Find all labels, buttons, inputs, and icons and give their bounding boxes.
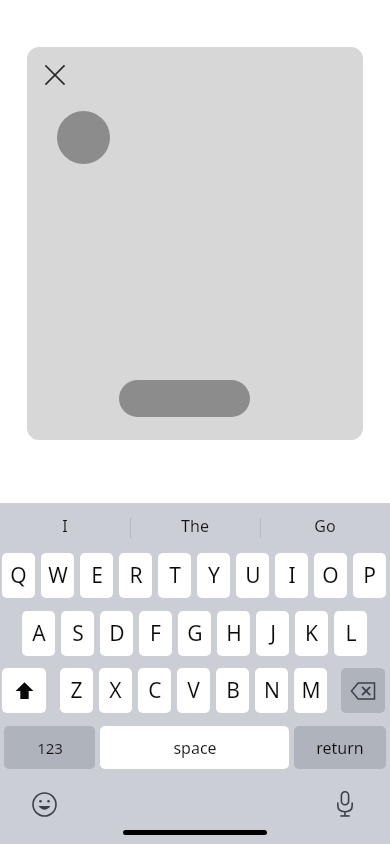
button[interactable]: I	[275, 553, 308, 598]
staticText: L	[345, 619, 357, 648]
button[interactable]: space	[100, 726, 289, 769]
button[interactable]: P	[353, 553, 386, 598]
staticText: Q	[10, 561, 27, 590]
staticText: N	[264, 676, 280, 705]
button[interactable]: Close	[35, 55, 75, 95]
staticText: D	[109, 619, 125, 648]
button[interactable]: Backspace	[341, 668, 385, 713]
button[interactable]: I	[0, 503, 130, 548]
button[interactable]: 123	[4, 726, 95, 769]
staticText: A	[32, 619, 46, 648]
button[interactable]: M	[294, 668, 327, 713]
button[interactable]: Z	[60, 668, 93, 713]
staticText: K	[305, 619, 318, 648]
staticText: G	[187, 619, 203, 648]
staticText: F	[150, 619, 161, 648]
staticText: The	[181, 515, 209, 537]
button[interactable]: U	[236, 553, 269, 598]
staticText: M	[301, 676, 321, 705]
button[interactable]: Dictation	[327, 786, 363, 822]
button[interactable]: O	[314, 553, 347, 598]
button[interactable]: return	[294, 726, 386, 769]
staticText: return	[316, 737, 364, 759]
staticText: S	[72, 619, 84, 648]
staticText: I	[288, 561, 296, 590]
button[interactable]: D	[100, 611, 133, 656]
button[interactable]: G	[178, 611, 211, 656]
button[interactable]: Go	[260, 503, 390, 548]
staticText: X	[109, 676, 122, 705]
staticText: E	[91, 561, 103, 590]
button[interactable]: Q	[2, 553, 35, 598]
button[interactable]: W	[41, 553, 74, 598]
button[interactable]: Shift	[2, 668, 46, 713]
button[interactable]: X	[99, 668, 132, 713]
button[interactable]: K	[295, 611, 328, 656]
staticText: O	[322, 561, 339, 590]
staticText: B	[226, 676, 240, 705]
button[interactable]: Action	[119, 380, 250, 417]
button[interactable]: A	[22, 611, 55, 656]
button[interactable]: B	[216, 668, 249, 713]
button[interactable]: L	[334, 611, 367, 656]
staticText: space	[173, 737, 217, 759]
staticText: P	[363, 561, 376, 590]
staticText: U	[245, 561, 261, 590]
button[interactable]: E	[80, 553, 113, 598]
staticText: R	[129, 561, 143, 590]
staticText: C	[148, 676, 162, 705]
button[interactable]: N	[255, 668, 288, 713]
button[interactable]: Avatar	[57, 111, 110, 164]
staticText: Z	[70, 676, 83, 705]
button[interactable]: The	[130, 503, 260, 548]
button[interactable]: R	[119, 553, 152, 598]
button[interactable]: Y	[197, 553, 230, 598]
button[interactable]: S	[61, 611, 94, 656]
button[interactable]: V	[177, 668, 210, 713]
button[interactable]: F	[139, 611, 172, 656]
staticText: Go	[314, 515, 336, 537]
staticText: W	[48, 561, 68, 590]
button[interactable]: Emoji	[26, 786, 62, 822]
staticText: J	[270, 619, 276, 648]
button[interactable]: H	[217, 611, 250, 656]
staticText: I	[62, 515, 68, 537]
staticText: Y	[208, 561, 220, 590]
staticText: H	[226, 619, 242, 648]
staticText: 123	[37, 738, 63, 758]
staticText: V	[187, 676, 200, 705]
button[interactable]: C	[138, 668, 171, 713]
button[interactable]: J	[256, 611, 289, 656]
staticText: T	[169, 561, 181, 590]
button[interactable]: T	[158, 553, 191, 598]
